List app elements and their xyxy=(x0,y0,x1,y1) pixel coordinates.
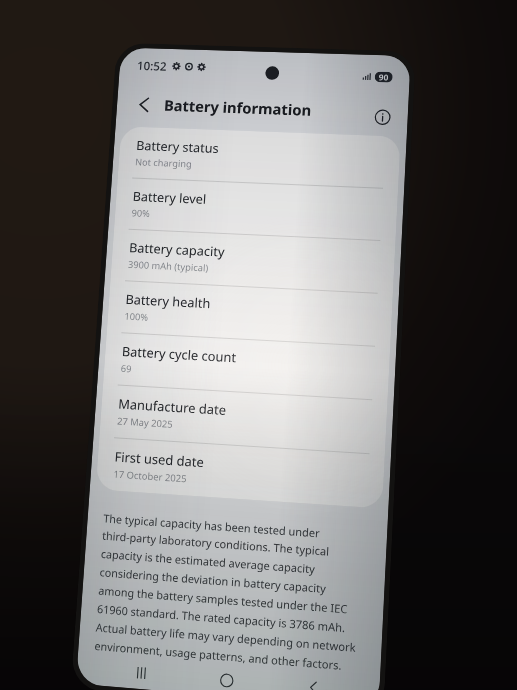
button[interactable]: Battery capacity xyxy=(110,228,396,293)
button[interactable]: Recent apps xyxy=(120,655,162,690)
staticText: Battery cycle count xyxy=(121,342,237,366)
button[interactable]: Battery health xyxy=(107,280,393,347)
button[interactable]: Navigate up xyxy=(127,87,161,121)
staticText: 100% xyxy=(124,310,149,324)
staticText: Not charging xyxy=(135,156,193,170)
staticText: 10:52 xyxy=(137,57,167,73)
staticText: 17 October 2025 xyxy=(113,467,187,485)
staticText: 27 May 2025 xyxy=(117,414,174,431)
staticText: 90% xyxy=(131,207,150,220)
button[interactable]: Home xyxy=(205,662,248,690)
button[interactable]: First used date xyxy=(96,436,385,509)
staticText: Battery capacity xyxy=(129,238,225,260)
staticText: Battery information xyxy=(163,95,312,121)
button[interactable]: Battery cycle count xyxy=(103,331,390,400)
staticText: Battery level xyxy=(132,187,207,208)
button[interactable]: Back xyxy=(291,669,334,690)
staticText: The typical capacity has been tested und… xyxy=(94,510,363,674)
staticText: 90 xyxy=(378,72,389,82)
staticText: First used date xyxy=(114,447,205,471)
staticText: Battery health xyxy=(125,290,211,312)
button[interactable]: Manufacture date xyxy=(99,384,388,454)
staticText: Manufacture date xyxy=(118,395,228,419)
button[interactable]: About battery information xyxy=(365,101,400,132)
button[interactable]: Battery status xyxy=(118,126,401,188)
staticText: 3900 mAh (typical) xyxy=(128,258,209,275)
staticText: 69 xyxy=(120,362,132,375)
staticText: Battery status xyxy=(136,136,220,157)
button[interactable]: Battery level xyxy=(114,177,398,241)
